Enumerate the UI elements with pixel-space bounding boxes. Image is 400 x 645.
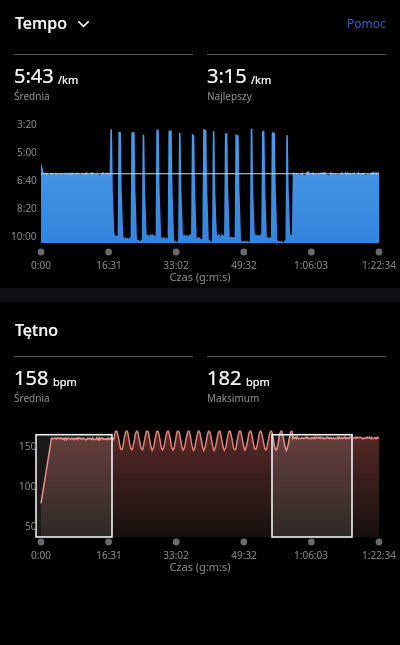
staticText: 150 (19, 439, 37, 453)
staticText: 1:06:03 (294, 548, 328, 562)
staticText: 49:32 (231, 548, 257, 562)
staticText: 0:00 (31, 548, 51, 562)
staticText: 6:40 (17, 173, 37, 187)
staticText: 10:00 (11, 229, 37, 243)
staticText: 33:02 (163, 548, 189, 562)
staticText: /km (251, 72, 272, 87)
staticText: Czas (g:m:s) (0, 269, 400, 284)
staticText: Tętno (15, 319, 58, 339)
staticText: Średnia (14, 391, 50, 405)
staticText: 1:22:34 (362, 548, 396, 562)
button[interactable]: Pomoc (343, 11, 390, 35)
staticText: 3:15 (207, 62, 247, 89)
staticText: 49:32 (231, 258, 257, 272)
staticText: 16:31 (96, 548, 122, 562)
staticText: Tempo (15, 12, 67, 34)
staticText: Średnia (14, 89, 50, 103)
staticText: 5:43 (14, 62, 54, 89)
staticText: bpm (53, 374, 77, 389)
staticText: Pomoc (347, 15, 386, 31)
button[interactable]: Tempo (12, 9, 93, 37)
staticText: 1:06:03 (294, 258, 328, 272)
staticText: Czas (g:m:s) (0, 559, 400, 574)
staticText: /km (58, 72, 79, 87)
staticText: 33:02 (163, 258, 189, 272)
staticText: 8:20 (17, 201, 37, 215)
staticText: 182 (207, 364, 242, 391)
staticText: 1:22:34 (362, 258, 396, 272)
button[interactable]: Tętno (12, 316, 61, 342)
staticText: Najlepszy (207, 89, 252, 103)
staticText: 100 (19, 479, 37, 493)
staticText: 158 (14, 364, 49, 391)
staticText: 3:20 (17, 117, 37, 131)
staticText: 16:31 (96, 258, 122, 272)
staticText: Maksimum (207, 391, 260, 405)
staticText: 5:00 (17, 145, 37, 159)
staticText: 0:00 (31, 258, 51, 272)
staticText: bpm (246, 374, 270, 389)
staticText: 50 (25, 519, 37, 533)
